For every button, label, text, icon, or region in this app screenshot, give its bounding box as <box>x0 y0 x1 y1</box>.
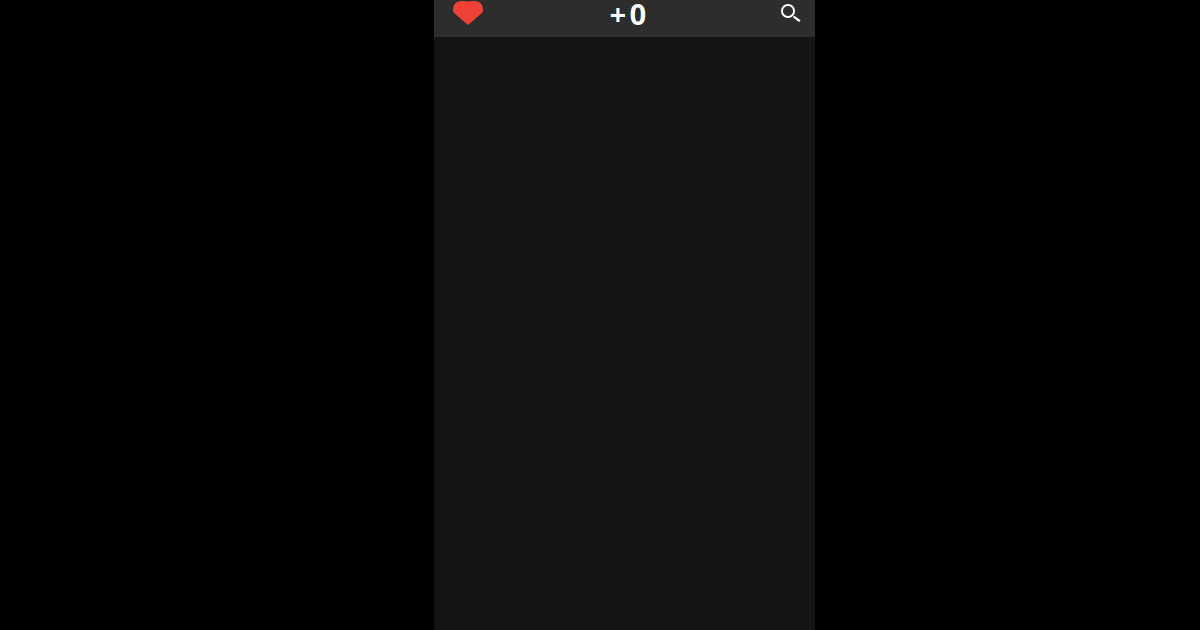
staticText: 0 <box>629 0 646 33</box>
button[interactable]: Favorites <box>453 1 483 25</box>
staticText: + <box>609 0 626 33</box>
button[interactable]: Search <box>782 5 801 22</box>
